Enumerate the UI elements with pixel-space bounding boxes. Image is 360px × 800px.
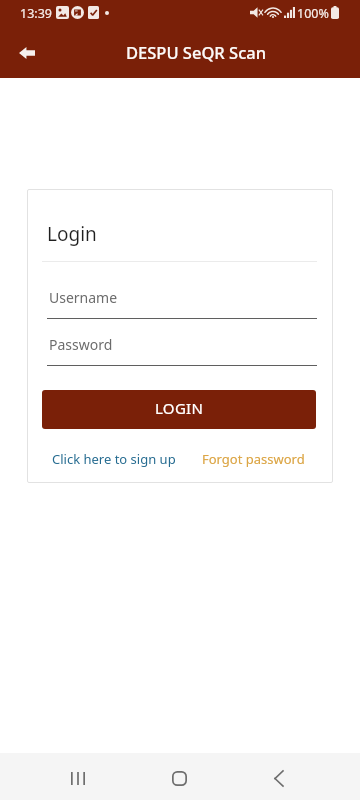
button[interactable]: Forgot password xyxy=(194,442,313,476)
staticText: Username xyxy=(49,288,118,307)
staticText: LOGIN xyxy=(155,398,204,418)
staticText: 13:39 xyxy=(20,5,52,22)
button[interactable]: LOGIN xyxy=(42,390,316,429)
button[interactable]: Home xyxy=(155,756,203,800)
button[interactable]: Back xyxy=(255,756,303,800)
button[interactable]: Click here to sign up xyxy=(44,442,184,476)
staticText: 100% xyxy=(297,5,329,22)
staticText: Password xyxy=(49,335,113,354)
button[interactable]: Recent apps xyxy=(54,756,102,800)
button[interactable]: Back xyxy=(8,34,46,72)
staticText: Login xyxy=(47,221,97,247)
staticText: Forgot password xyxy=(202,450,305,468)
staticText: Click here to sign up xyxy=(52,450,176,468)
staticText: DESPU SeQR Scan xyxy=(126,41,267,63)
